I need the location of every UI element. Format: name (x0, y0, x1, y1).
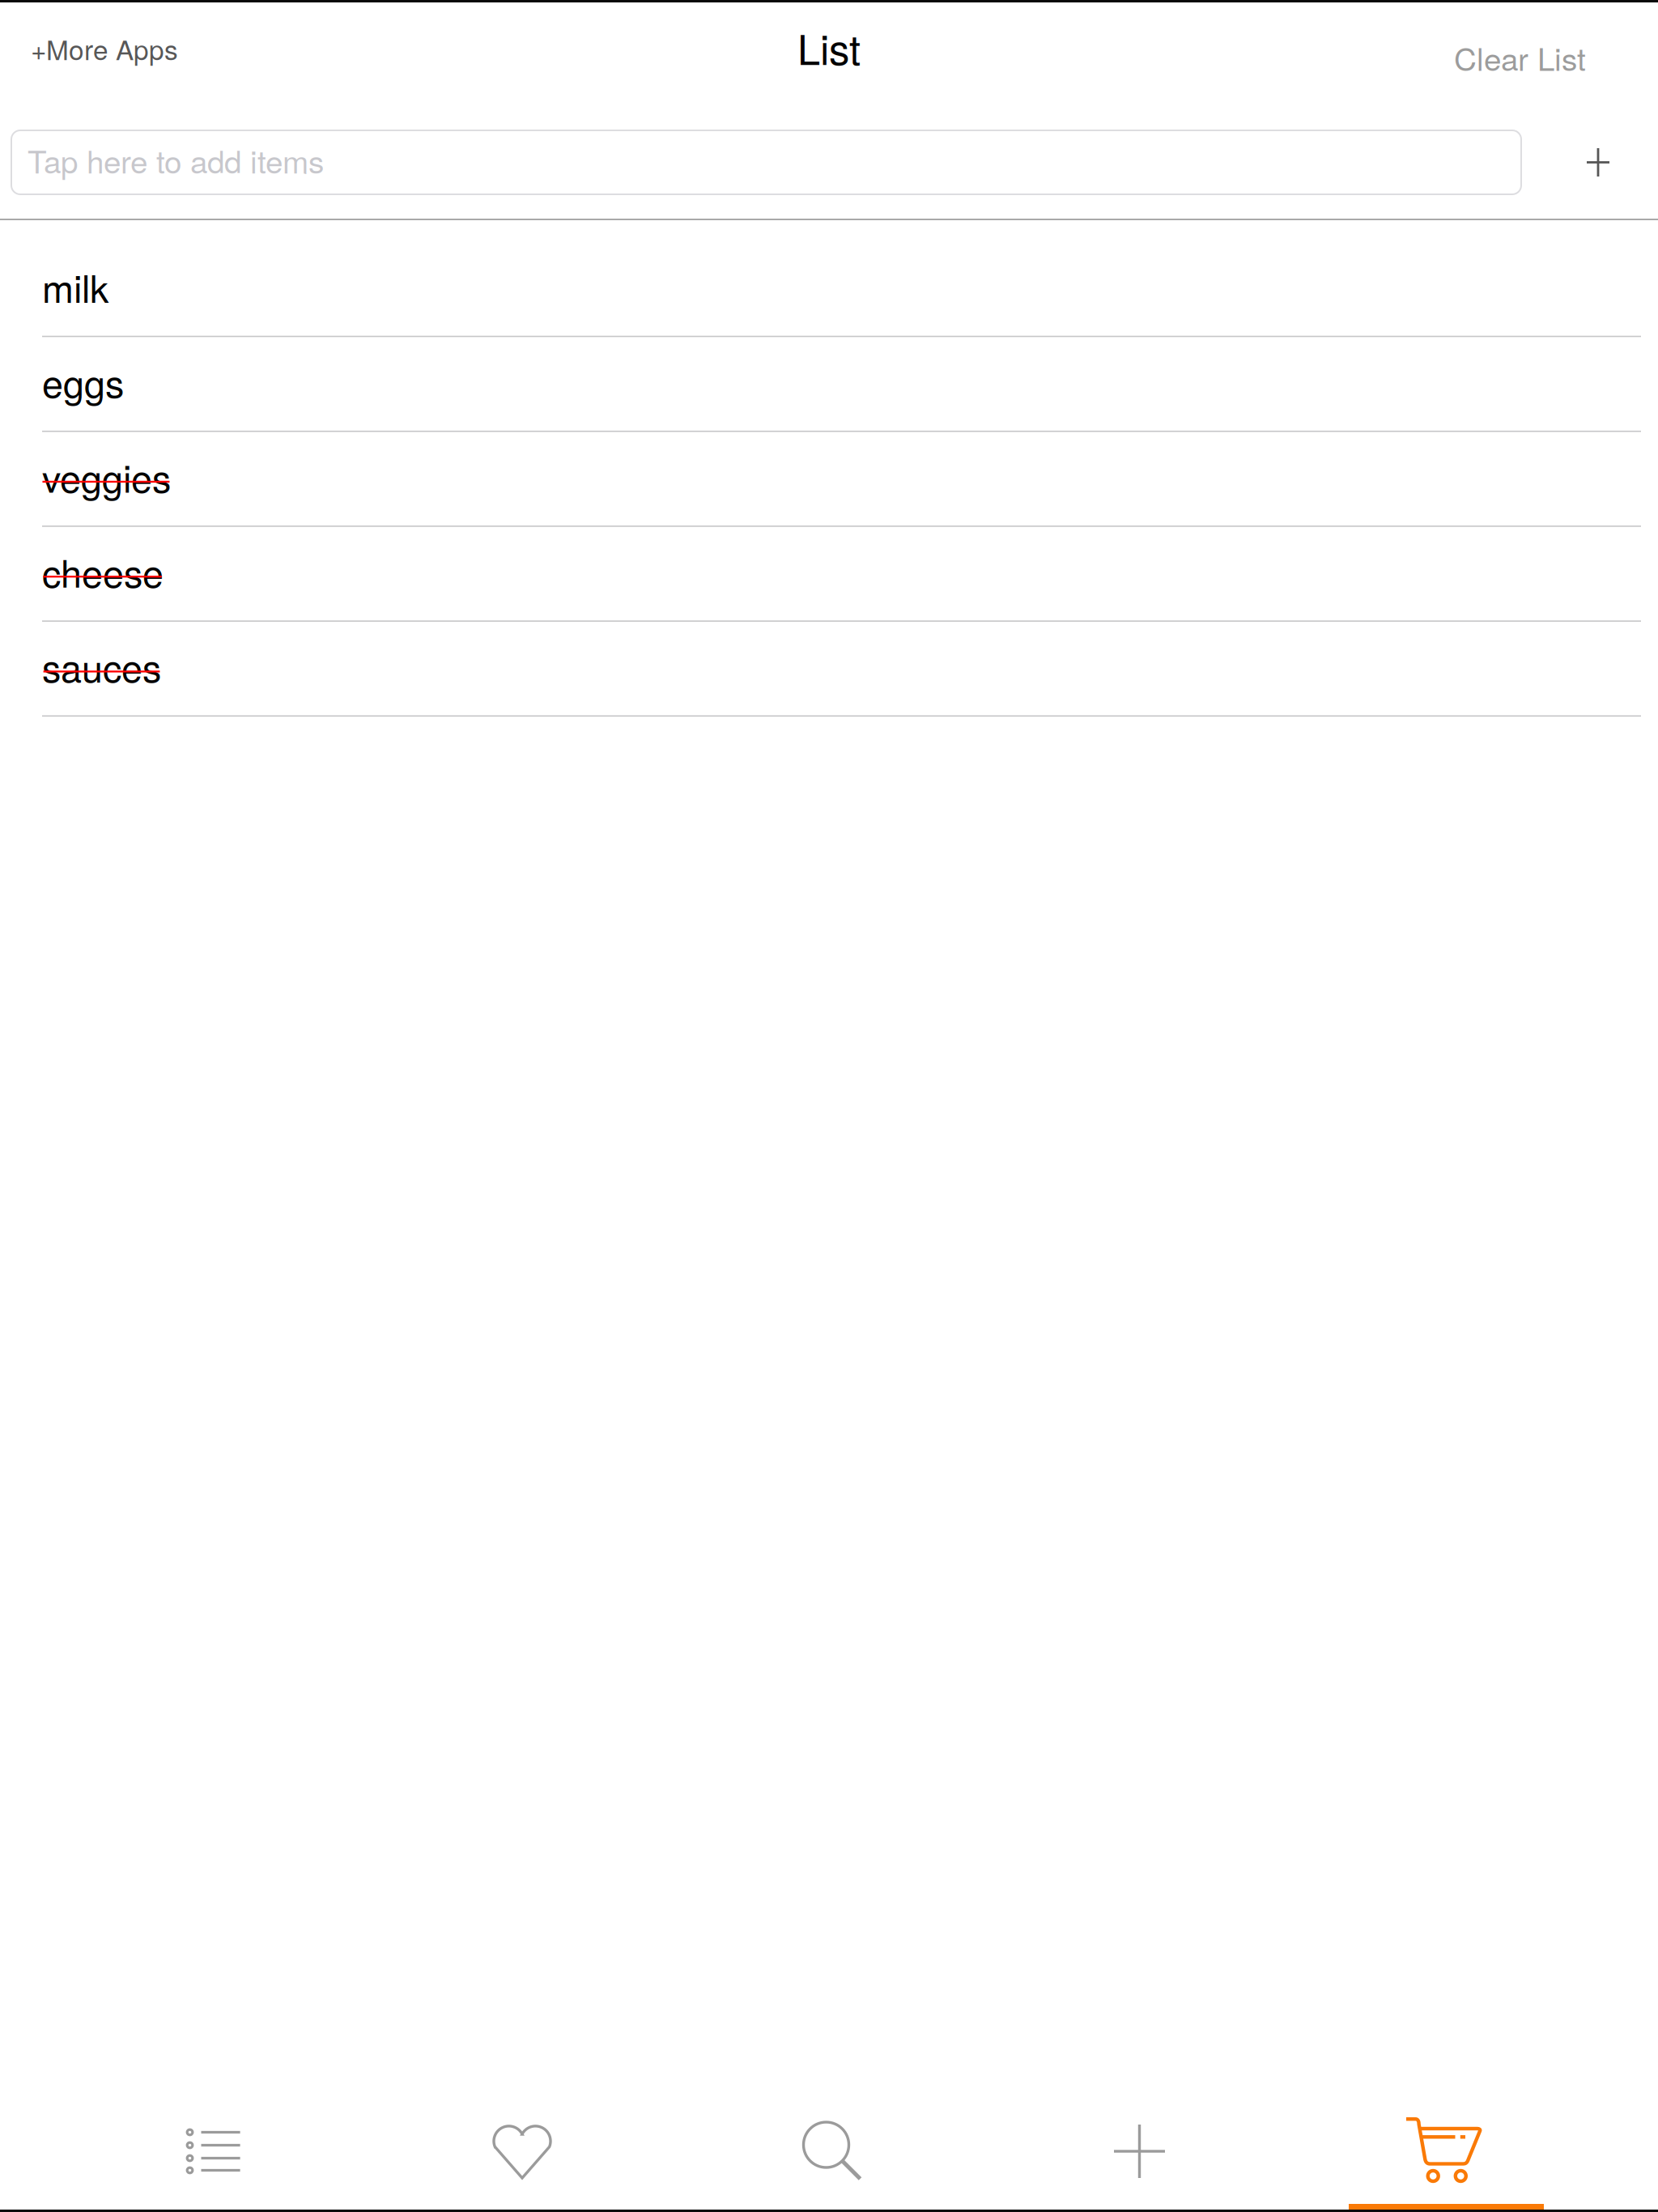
staticText: cheese (42, 544, 164, 598)
button[interactable]: New item (984, 2073, 1292, 2210)
staticText: eggs (42, 354, 124, 408)
button[interactable]: Favorites (367, 2073, 675, 2210)
button[interactable]: Lists (58, 2073, 367, 2210)
staticText: sauces (42, 639, 161, 693)
staticText: milk (42, 259, 108, 314)
button[interactable]: eggs (0, 337, 1658, 432)
staticText: Clear List (1454, 35, 1586, 80)
button[interactable]: +More Apps (0, 11, 198, 86)
staticText: Tap here to add items (28, 137, 324, 182)
button[interactable]: Search (675, 2073, 984, 2210)
staticText: List (797, 18, 861, 77)
button[interactable]: Tap here to add items (11, 130, 1521, 194)
button[interactable]: Add item (1538, 130, 1658, 194)
button[interactable]: Cart (1292, 2073, 1601, 2210)
button[interactable]: sauces (0, 622, 1658, 717)
button[interactable]: veggies (0, 432, 1658, 527)
button[interactable]: cheese (0, 527, 1658, 622)
staticText: +More Apps (31, 29, 178, 68)
button[interactable]: Clear List (1435, 17, 1658, 97)
staticText: veggies (42, 449, 171, 503)
button[interactable]: milk (0, 242, 1658, 337)
